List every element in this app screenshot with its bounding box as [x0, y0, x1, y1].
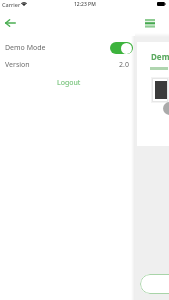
button[interactable]	[140, 274, 169, 294]
button[interactable]: Demo Mode	[5, 39, 133, 56]
staticText: Demo	[151, 51, 169, 62]
staticText: Version	[5, 60, 30, 70]
staticText: Logout	[57, 78, 81, 88]
button[interactable]: Logout	[49, 75, 89, 91]
button[interactable]: Back	[2, 14, 19, 31]
staticText: Demo Mode	[5, 43, 46, 53]
staticText: Carrier	[2, 1, 21, 8]
staticText: 2.0	[119, 60, 129, 70]
button[interactable]: Menu	[139, 14, 160, 32]
staticText: 12:23 PM	[74, 1, 96, 8]
